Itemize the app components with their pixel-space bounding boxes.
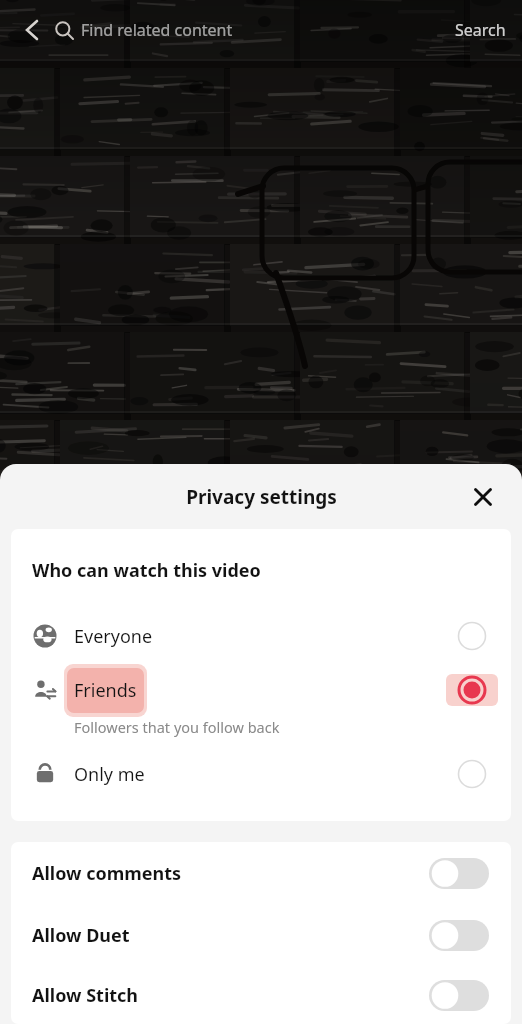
button[interactable]: Search bbox=[455, 10, 506, 50]
staticText: Only me bbox=[74, 762, 145, 787]
staticText: Followers that you follow back bbox=[74, 717, 280, 737]
staticText: Find related content bbox=[81, 19, 233, 41]
button[interactable]: Close bbox=[466, 480, 500, 514]
staticText: Privacy settings bbox=[186, 484, 337, 510]
button[interactable]: Allow Stitch bbox=[11, 966, 511, 1024]
staticText: Friends bbox=[74, 678, 137, 703]
button[interactable]: Allow Duet bbox=[11, 904, 511, 966]
staticText: Search bbox=[455, 19, 506, 41]
staticText: Allow comments bbox=[32, 861, 182, 886]
staticText: Allow Stitch bbox=[32, 983, 139, 1008]
staticText: Who can watch this video bbox=[32, 558, 261, 583]
button[interactable]: Find related content bbox=[54, 10, 455, 50]
staticText: Everyone bbox=[74, 624, 153, 649]
button[interactable]: Only me bbox=[11, 747, 511, 801]
staticText: Allow Duet bbox=[32, 923, 130, 948]
button[interactable]: Allow comments bbox=[11, 842, 511, 904]
button[interactable]: Friends bbox=[11, 663, 511, 747]
button[interactable]: Back bbox=[10, 8, 54, 52]
button[interactable]: Everyone bbox=[11, 609, 511, 663]
